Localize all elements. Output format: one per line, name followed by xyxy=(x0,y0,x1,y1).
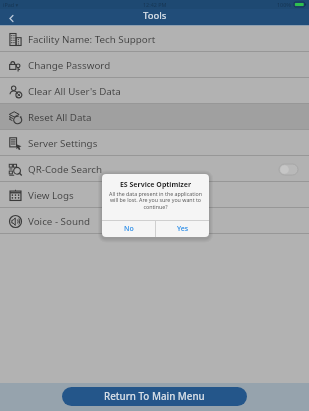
staticText: 100% xyxy=(277,1,291,8)
staticText: iPad ▾ xyxy=(3,1,19,8)
staticText: Clear All User's Data xyxy=(28,85,121,98)
staticText: Voice - Sound xyxy=(28,215,91,228)
button[interactable]: QR-Code Search xyxy=(0,156,309,182)
button[interactable]: No xyxy=(102,221,155,237)
staticText: All the data present in the application … xyxy=(106,190,205,211)
button[interactable]: Voice - Sound xyxy=(0,208,309,234)
button[interactable]: Yes xyxy=(156,221,209,237)
button[interactable]: Facility Name: Tech Support xyxy=(0,26,309,52)
button[interactable]: Return To Main Menu xyxy=(62,387,247,406)
button[interactable]: Change Password xyxy=(0,52,309,78)
staticText: QR-Code Search xyxy=(28,163,103,176)
button[interactable]: Clear All User's Data xyxy=(0,78,309,104)
staticText: ES Service Optimizer xyxy=(102,180,209,190)
staticText: No xyxy=(124,224,134,234)
staticText: Facility Name: Tech Support xyxy=(28,33,156,46)
staticText: Yes xyxy=(177,224,189,234)
button[interactable]: Server Settings xyxy=(0,130,309,156)
staticText: Change Password xyxy=(28,59,111,72)
staticText: Tools xyxy=(143,9,167,22)
staticText: Return To Main Menu xyxy=(104,390,205,403)
button[interactable]: Back xyxy=(4,11,18,25)
staticText: Server Settings xyxy=(28,137,98,150)
staticText: 12:42 PM xyxy=(143,1,167,8)
button[interactable]: View Logs xyxy=(0,182,309,208)
button[interactable]: Reset All Data xyxy=(0,104,309,130)
staticText: Reset All Data xyxy=(28,111,92,124)
staticText: View Logs xyxy=(28,189,74,202)
